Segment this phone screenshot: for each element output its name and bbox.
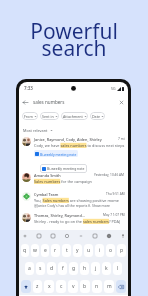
button[interactable]: Keyboard tool 2 bbox=[35, 232, 42, 239]
button[interactable]: q bbox=[21, 244, 29, 257]
staticText: v bbox=[72, 283, 75, 290]
button[interactable]: Cymbal Team bbox=[19, 190, 128, 211]
button[interactable]: Attachment bbox=[61, 112, 88, 120]
staticText: k bbox=[105, 265, 108, 272]
button[interactable]: x bbox=[44, 280, 54, 293]
staticText: Bi-weekly meeting note bbox=[47, 166, 85, 171]
button[interactable]: p bbox=[117, 244, 126, 257]
staticText: May 7 1:07 PM bbox=[103, 213, 125, 217]
button[interactable]: w bbox=[31, 244, 39, 257]
button[interactable]: Keyboard tool 8 bbox=[119, 232, 126, 239]
staticText: Attachment bbox=[63, 114, 83, 119]
button[interactable]: Shift bbox=[21, 280, 31, 293]
button[interactable]: j bbox=[91, 262, 100, 275]
staticText: Yesterday, 10:46 AM bbox=[94, 173, 125, 177]
button[interactable]: o bbox=[106, 244, 115, 257]
staticText: Sales numbers for the campaign bbox=[34, 179, 92, 184]
staticText: Shirley - ready to go on the sales numbe… bbox=[34, 219, 121, 224]
staticText: You, Sales numbers are showing positive … bbox=[34, 198, 119, 203]
staticText: q bbox=[23, 247, 27, 254]
staticText: sales numbers bbox=[33, 99, 65, 105]
staticText: p bbox=[120, 247, 124, 254]
button[interactable]: Sent in bbox=[40, 112, 59, 120]
button[interactable]: n bbox=[92, 280, 102, 293]
staticText: d bbox=[50, 265, 54, 272]
staticText: h bbox=[83, 265, 87, 272]
button[interactable]: Bi-weekly meeting note bbox=[34, 150, 78, 157]
staticText: Bi-weekly meeting note bbox=[40, 152, 77, 156]
button[interactable]: f bbox=[58, 262, 67, 275]
button[interactable]: c bbox=[56, 280, 66, 293]
button[interactable]: Backspace bbox=[116, 280, 126, 293]
button[interactable]: Thomas, Shirley, Raymond... bbox=[19, 211, 128, 231]
button[interactable]: s bbox=[36, 262, 45, 275]
staticText: Amanda Smith bbox=[34, 173, 93, 178]
button[interactable]: From bbox=[22, 112, 38, 120]
staticText: From bbox=[24, 114, 33, 119]
staticText: Thomas, Shirley, Raymond... bbox=[34, 213, 102, 218]
button[interactable]: Keyboard tool 3 bbox=[49, 232, 56, 239]
staticText: Sent in bbox=[42, 114, 54, 119]
staticText: w bbox=[33, 247, 37, 254]
staticText: 7:33 bbox=[24, 85, 33, 91]
staticText: o bbox=[109, 247, 113, 254]
button[interactable]: Bi-weekly meeting note bbox=[40, 164, 87, 173]
button[interactable]: h bbox=[80, 262, 89, 275]
button[interactable]: Keyboard tool 4 bbox=[63, 232, 70, 239]
staticText: Cymbal Team bbox=[34, 192, 105, 197]
staticText: n bbox=[95, 283, 99, 290]
button[interactable]: Back bbox=[19, 95, 128, 109]
staticText: b bbox=[83, 283, 87, 290]
button[interactable]: l bbox=[113, 262, 122, 275]
button[interactable]: d bbox=[47, 262, 56, 275]
staticText: c bbox=[60, 283, 63, 290]
button[interactable]: g bbox=[69, 262, 78, 275]
staticText: Date bbox=[92, 114, 100, 119]
button[interactable]: i bbox=[95, 244, 104, 257]
button[interactable]: Keyboard tool 7 bbox=[105, 232, 112, 239]
button[interactable]: Amanda Smith bbox=[19, 171, 128, 190]
button[interactable]: Keyboard tool 5 bbox=[77, 232, 84, 239]
staticText: Thu 9:51 AM bbox=[106, 192, 125, 196]
button[interactable]: Keyboard tool 6 bbox=[91, 232, 98, 239]
staticText: x bbox=[48, 283, 51, 290]
other: Clear search bbox=[117, 98, 126, 107]
button[interactable]: z bbox=[33, 280, 42, 293]
other: Back bbox=[21, 98, 30, 107]
staticText: 7 mi bbox=[118, 137, 125, 141]
staticText: m bbox=[107, 283, 112, 290]
staticText: z bbox=[36, 283, 39, 290]
staticText: Most relevant bbox=[23, 128, 48, 133]
button[interactable]: t bbox=[62, 244, 71, 257]
staticText: g bbox=[72, 265, 76, 272]
staticText: e bbox=[44, 247, 47, 254]
button[interactable]: b bbox=[80, 280, 90, 293]
button[interactable]: m bbox=[104, 280, 114, 293]
staticText: r bbox=[54, 247, 57, 254]
staticText: j bbox=[95, 265, 97, 272]
button[interactable]: Keyboard tool 1 bbox=[21, 232, 28, 239]
staticText: l bbox=[117, 265, 119, 272]
staticText: Cody, we have sales numbers to discuss n… bbox=[34, 143, 125, 148]
button[interactable]: Date bbox=[90, 112, 105, 120]
button[interactable]: k bbox=[102, 262, 111, 275]
button[interactable]: y bbox=[73, 244, 82, 257]
button[interactable]: a bbox=[25, 262, 34, 275]
staticText: @Janice Cody's has all the reports fi. S… bbox=[34, 203, 111, 208]
button[interactable]: r bbox=[51, 244, 60, 257]
button[interactable]: Janice, Raymond, Cody, Aiden, Shirley bbox=[19, 135, 128, 171]
button[interactable]: e bbox=[41, 244, 49, 257]
button[interactable]: Most relevant bbox=[23, 126, 53, 134]
button[interactable]: u bbox=[84, 244, 93, 257]
staticText: Janice, Raymond, Cody, Aiden, Shirley bbox=[34, 137, 117, 142]
button[interactable]: v bbox=[68, 280, 78, 293]
staticText: t bbox=[66, 247, 68, 254]
staticText: s bbox=[39, 265, 42, 272]
staticText: u bbox=[87, 247, 91, 254]
staticText: y bbox=[76, 247, 79, 254]
staticText: Powerful search bbox=[0, 17, 148, 62]
staticText: f bbox=[62, 265, 64, 272]
staticText: a bbox=[28, 265, 31, 272]
staticText: i bbox=[99, 247, 101, 254]
staticText: 5G bbox=[111, 86, 116, 91]
